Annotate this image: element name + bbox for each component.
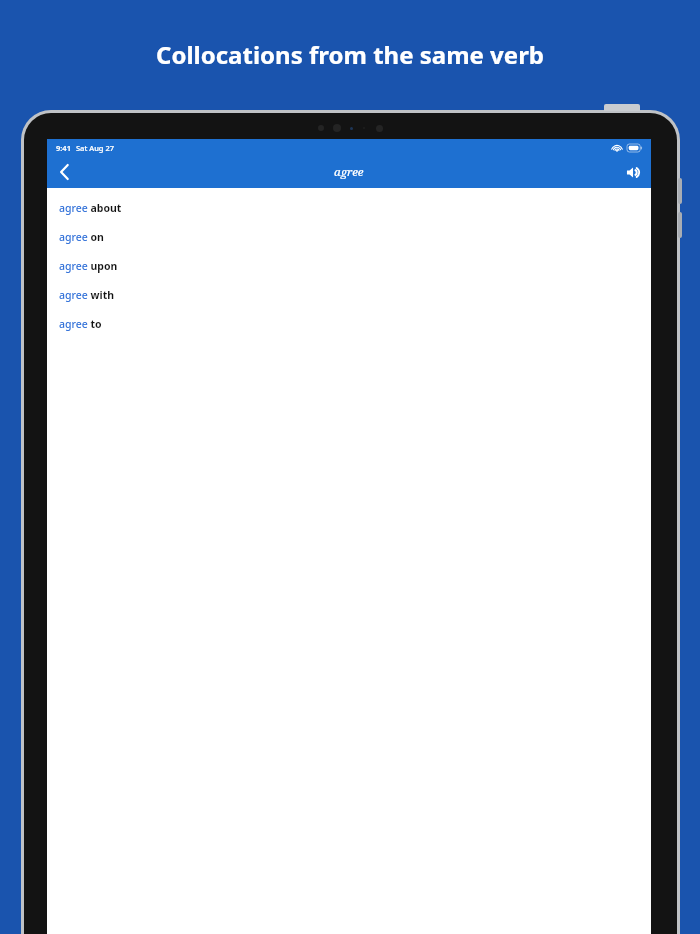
button[interactable]: Back — [47, 156, 81, 188]
staticText: Sat Aug 27 — [76, 143, 115, 153]
button[interactable]: agree to — [47, 309, 651, 338]
staticText: Collocations from the same verb — [156, 38, 545, 71]
staticText: agree on — [59, 230, 104, 244]
staticText: agree about — [59, 201, 122, 215]
button[interactable]: agree on — [47, 222, 651, 251]
staticText: agree to — [59, 317, 102, 331]
button[interactable]: agree about — [47, 193, 651, 222]
button[interactable]: agree with — [47, 280, 651, 309]
staticText: agree upon — [59, 259, 118, 273]
staticText: agree — [334, 164, 364, 180]
button[interactable]: Play pronunciation — [617, 156, 651, 188]
staticText: 9:41 — [56, 143, 71, 153]
button[interactable]: agree upon — [47, 251, 651, 280]
staticText: agree with — [59, 288, 115, 302]
